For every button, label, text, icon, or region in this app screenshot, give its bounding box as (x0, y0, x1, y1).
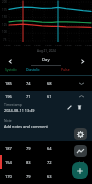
button[interactable]: 196 (0, 91, 92, 101)
staticText: 13:49 (45, 43, 52, 46)
staticText: 13:49 (85, 43, 92, 46)
staticText: 187 (5, 146, 12, 151)
staticText: Timestamp (4, 102, 22, 107)
button[interactable]: 154 (0, 155, 92, 169)
staticText: 154 (5, 160, 12, 165)
staticText: Pulse (61, 67, 70, 72)
button[interactable]: Edit (63, 101, 75, 113)
button[interactable]: Settings (74, 128, 87, 140)
staticText: 100 (2, 30, 7, 34)
staticText: 13:49 (75, 43, 82, 46)
staticText: 64 (47, 146, 52, 151)
staticText: Systolic (5, 67, 17, 72)
staticText: 13:49 (34, 43, 41, 46)
staticText: 200 (2, 0, 7, 4)
staticText: 79 (26, 174, 31, 179)
staticText: Add notes and comment (4, 124, 48, 129)
staticText: 79 (26, 146, 31, 151)
staticText: 13:49 (65, 43, 72, 46)
staticText: Day (42, 57, 50, 63)
button[interactable]: Previous day (3, 56, 17, 66)
button[interactable]: Add reading (72, 162, 88, 179)
staticText: 74 (26, 81, 31, 86)
staticText: Note (4, 118, 12, 123)
button[interactable]: 170 (0, 169, 92, 184)
staticText: 13:49 (4, 43, 11, 46)
button[interactable]: Day (29, 56, 63, 66)
staticText: Aug 21, 2024 (37, 49, 56, 53)
staticText: 68 (47, 81, 52, 86)
staticText: 13:49 (14, 43, 21, 46)
button[interactable]: 185 (0, 76, 92, 91)
button[interactable]: Next day (75, 56, 89, 66)
staticText: 13:49 (24, 43, 31, 46)
button[interactable]: Delete (73, 101, 85, 113)
staticText: 150 (2, 15, 7, 19)
staticText: Diastolic (26, 67, 40, 72)
staticText: 125 (2, 23, 7, 27)
staticText: 72 (47, 160, 52, 165)
staticText: 61 (47, 94, 52, 99)
staticText: 13:49 (55, 43, 62, 46)
staticText: 83 (26, 160, 31, 165)
button[interactable]: Trends (74, 145, 87, 157)
staticText: 2024-08-11 13:49 (4, 108, 35, 113)
staticText: 175 (2, 8, 7, 12)
staticText: 196 (5, 94, 12, 99)
staticText: 185 (5, 81, 12, 86)
button[interactable]: 187 (0, 141, 92, 155)
staticText: 75 (3, 38, 7, 42)
staticText: 170 (5, 174, 12, 179)
staticText: 71 (26, 94, 31, 99)
staticText: 63 (47, 174, 52, 179)
